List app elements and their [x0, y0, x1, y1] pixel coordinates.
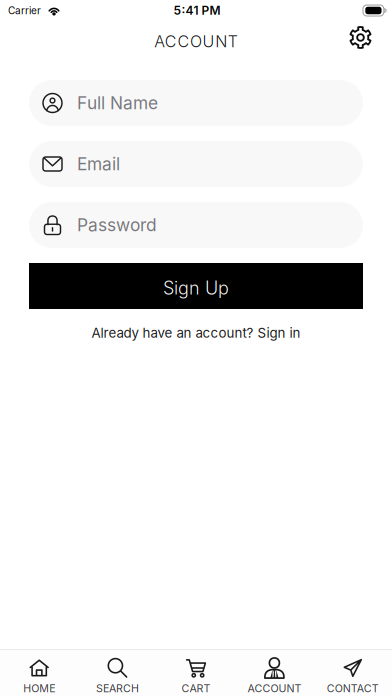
button[interactable]: Sign Up	[29, 263, 363, 309]
staticText: SEARCH	[96, 682, 139, 695]
button[interactable]: CART	[157, 650, 235, 696]
staticText: Email	[77, 153, 120, 174]
staticText: CART	[181, 682, 210, 695]
staticText: Password	[77, 214, 157, 235]
button[interactable]: Settings	[343, 20, 378, 55]
staticText: HOME	[23, 682, 55, 695]
staticText: Carrier	[8, 4, 41, 17]
button[interactable]: HOME	[0, 650, 78, 696]
staticText: CONTACT	[327, 682, 379, 695]
button[interactable]: SEARCH	[78, 650, 157, 696]
staticText: Full Name	[77, 92, 158, 113]
staticText: 5:41 PM	[173, 3, 220, 18]
staticText: ACCOUNT	[154, 32, 238, 51]
button[interactable]: ACCOUNT	[235, 650, 314, 696]
staticText: ACCOUNT	[247, 682, 301, 695]
staticText: Already have an account? Sign in	[91, 325, 300, 341]
button[interactable]: Already have an account? Sign in	[29, 324, 363, 342]
button[interactable]: CONTACT	[314, 650, 392, 696]
staticText: Sign Up	[163, 277, 229, 299]
